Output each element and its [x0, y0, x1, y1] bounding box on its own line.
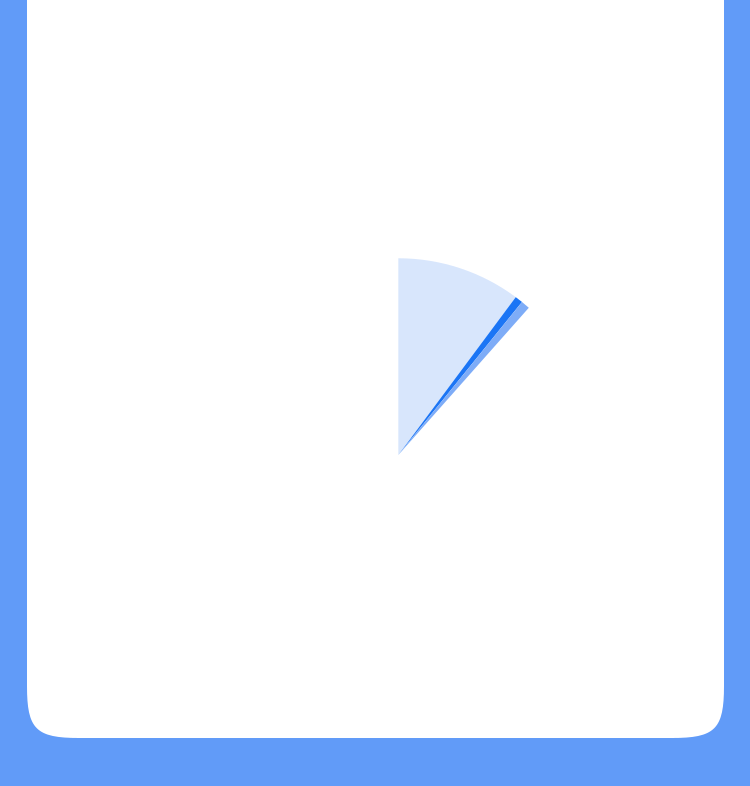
button[interactable]: Spending breakdown chart [202, 258, 595, 652]
